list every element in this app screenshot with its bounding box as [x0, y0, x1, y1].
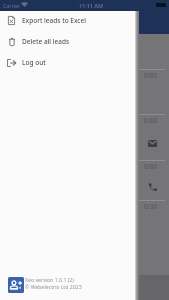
button[interactable]: Export leads to Excel	[0, 10, 136, 31]
staticText: Xeo version 1.0.1 (2)	[25, 276, 74, 283]
staticText: Export leads to Excel	[22, 16, 87, 25]
staticText: 0/80	[144, 116, 157, 124]
staticText: Log out	[22, 58, 46, 67]
staticText: Delete all leads	[22, 37, 70, 46]
button[interactable]: Delete all leads	[0, 31, 136, 52]
staticText: 11:11 AM	[79, 2, 104, 9]
staticText: 0/80	[144, 71, 157, 79]
other: Email	[148, 140, 157, 147]
other: Call	[148, 183, 157, 191]
staticText: Carrier	[3, 2, 21, 9]
staticText: 0/80	[144, 162, 157, 170]
button[interactable]: Log out	[0, 52, 136, 73]
staticText: 0/30	[144, 202, 157, 210]
staticText: © Webelectrix Ltd 2023	[25, 283, 82, 290]
